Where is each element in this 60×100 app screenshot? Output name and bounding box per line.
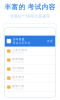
staticText: 会计职称 (12, 66, 24, 70)
button[interactable]: 公务员考试 (4, 47, 55, 56)
staticText: 查看 (47, 39, 53, 43)
staticText: 覆盖全部科目 (13, 41, 31, 45)
button[interactable]: 建筑工程 (4, 83, 55, 92)
staticText: 公务员考试 (12, 48, 27, 52)
staticText: 历年真题 (13, 38, 25, 41)
staticText: 教师资格 (12, 57, 24, 61)
staticText: 全国近千场考试真题库 (10, 14, 50, 19)
staticText: 医学考试 (12, 75, 24, 79)
staticText: 建筑工程 (12, 84, 24, 88)
button[interactable]: 会计职称 (4, 65, 55, 74)
button[interactable]: 医学考试 (4, 74, 55, 83)
button[interactable]: 教师资格 (4, 56, 55, 65)
staticText: 丰富的 考试内容 (4, 3, 55, 11)
button[interactable]: 历年真题 (4, 36, 55, 47)
